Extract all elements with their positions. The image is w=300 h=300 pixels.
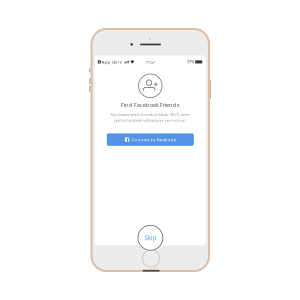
staticText: You choose which friends to follow. We'l…	[110, 112, 190, 117]
staticText: 11:57	[146, 59, 155, 65]
button[interactable]: Connect to Facebook	[107, 133, 194, 146]
staticText: Connect to Facebook	[132, 137, 176, 142]
staticText: Skip	[144, 234, 156, 242]
button[interactable]: Skip	[137, 225, 163, 251]
staticText: post to Facebook without your permission…	[114, 118, 186, 123]
staticText: Find Facebook Friends	[121, 101, 180, 109]
staticText: 97%	[187, 59, 194, 64]
staticText: App Store	[102, 59, 122, 65]
